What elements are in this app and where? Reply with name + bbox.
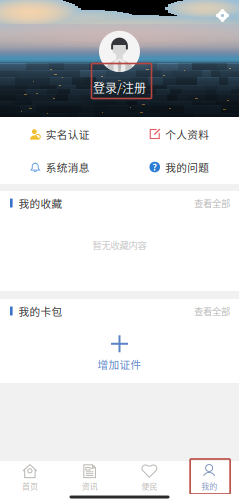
staticText: 我的收藏 bbox=[19, 195, 63, 211]
staticText: 系统消息 bbox=[46, 159, 90, 175]
staticText: 我的卡包 bbox=[19, 303, 63, 319]
staticText: 个人资料 bbox=[165, 126, 209, 142]
button[interactable]: 增加证件 bbox=[0, 323, 239, 383]
button[interactable]: 查看全部 bbox=[194, 191, 239, 215]
button[interactable]: 登录/注册 bbox=[83, 72, 156, 102]
staticText: 暂无收藏内容 bbox=[92, 238, 146, 252]
staticText: 查看全部 bbox=[194, 304, 230, 318]
staticText: 实名认证 bbox=[46, 126, 90, 142]
button[interactable]: 资讯 bbox=[60, 461, 120, 494]
staticText: 查看全部 bbox=[194, 196, 230, 210]
staticText: 首页 bbox=[22, 480, 38, 492]
button[interactable]: 系统消息 bbox=[0, 150, 119, 183]
button[interactable]: 首页 bbox=[0, 461, 60, 494]
staticText: ? bbox=[152, 160, 157, 173]
staticText: 我的问题 bbox=[165, 159, 209, 175]
button[interactable]: 我的 bbox=[179, 461, 239, 494]
staticText: 登录/注册 bbox=[93, 79, 146, 96]
staticText: 便民 bbox=[141, 480, 157, 492]
staticText: 增加证件 bbox=[97, 356, 141, 372]
button[interactable]: Settings bbox=[211, 4, 234, 27]
button[interactable]: 查看全部 bbox=[194, 299, 239, 323]
staticText: 资讯 bbox=[82, 480, 98, 492]
button[interactable]: 实名认证 bbox=[0, 117, 119, 150]
staticText: 我的 bbox=[201, 480, 217, 492]
button[interactable]: 个人资料 bbox=[119, 117, 239, 150]
button[interactable]: 便民 bbox=[119, 461, 179, 494]
button[interactable]: ? bbox=[119, 150, 239, 183]
